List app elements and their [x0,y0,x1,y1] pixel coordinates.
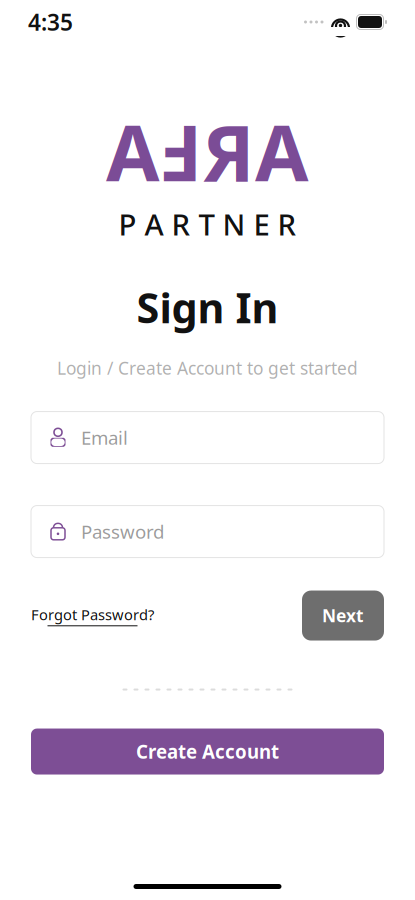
staticText: Sign In [136,280,278,334]
staticText: A [106,100,160,203]
staticText: Password [81,519,164,544]
staticText: 4:35 [28,7,73,37]
button[interactable]: Forgot Password? [31,605,154,626]
button[interactable]: Create Account [31,729,384,775]
staticText: Ⅎ [160,100,202,203]
staticText: Next [322,604,364,627]
staticText: A [255,100,309,203]
staticText: Create Account [136,739,279,764]
staticText: P A R T N E R [118,205,296,244]
staticText: Email [81,425,128,450]
staticText: Forgot Password? [31,605,154,624]
staticText: Я [202,100,255,203]
button[interactable]: Next [302,591,384,641]
staticText: Login / Create Account to get started [57,356,358,379]
